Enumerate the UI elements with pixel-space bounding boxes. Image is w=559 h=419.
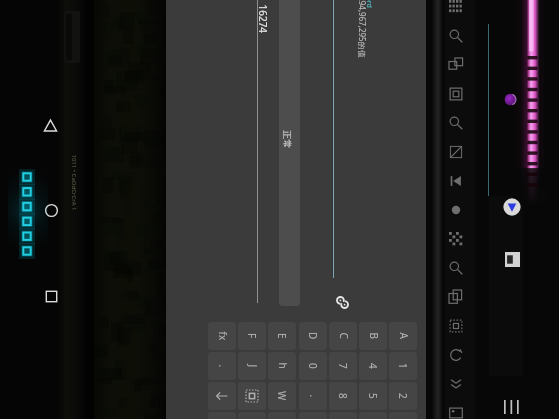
button[interactable]: Chip — [443, 226, 469, 252]
button[interactable]: . — [299, 382, 327, 410]
staticText: A — [396, 332, 410, 339]
button[interactable]: Recents — [37, 282, 65, 310]
button[interactable]: Zoom — [443, 255, 469, 281]
button[interactable]: Find person — [443, 110, 469, 136]
staticText: 7 — [336, 363, 350, 369]
button[interactable]: 8 — [329, 382, 357, 410]
staticText: C — [336, 332, 350, 339]
staticText: 1011 • CaOdCrCrA 1 — [69, 154, 77, 211]
button[interactable]: Copy — [443, 284, 469, 310]
button[interactable]: 7 — [329, 352, 357, 380]
staticText: 正常 — [281, 130, 292, 148]
button[interactable]: 2 — [389, 382, 417, 410]
button[interactable]: Frame — [443, 81, 469, 107]
staticText: E — [275, 333, 289, 339]
button[interactable]: Files — [502, 249, 522, 269]
button[interactable]: Image — [443, 400, 469, 419]
button[interactable]: Download — [443, 371, 469, 397]
button[interactable]: A — [389, 322, 417, 350]
staticText: h — [275, 362, 289, 369]
staticText: 4 — [366, 363, 380, 369]
button[interactable]: . — [208, 352, 236, 380]
staticText: 4,294,967,295的值 — [356, 0, 367, 58]
staticText: 5 — [366, 393, 380, 399]
button[interactable]: F — [238, 322, 266, 350]
button[interactable]: W — [268, 382, 296, 410]
staticText: J — [245, 364, 259, 367]
button[interactable]: Grid — [443, 0, 469, 20]
button[interactable]: 0 — [299, 352, 327, 380]
button[interactable]: Undo — [443, 342, 469, 368]
staticText: 8 — [336, 393, 350, 399]
staticText: . — [215, 364, 229, 367]
button[interactable]: J — [238, 352, 266, 380]
staticText: D — [306, 332, 320, 340]
button[interactable] — [208, 382, 236, 410]
button[interactable]: Home — [37, 196, 65, 224]
button[interactable]: D — [299, 322, 327, 350]
button[interactable]: 4 — [359, 352, 387, 380]
button[interactable]: B — [359, 322, 387, 350]
button[interactable]: Layers — [443, 52, 469, 78]
button[interactable]: Back — [36, 111, 64, 139]
button[interactable]: C — [329, 322, 357, 350]
staticText: fx — [215, 331, 229, 340]
button[interactable]: h — [268, 352, 296, 380]
button[interactable]: E — [268, 322, 296, 350]
button[interactable]: 5 — [359, 382, 387, 410]
staticText: word — [364, 0, 374, 8]
staticText: 3061 16274 — [258, 0, 270, 34]
staticText: 0 — [306, 363, 320, 369]
button[interactable] — [238, 382, 266, 410]
button[interactable]: fx — [208, 322, 236, 350]
button[interactable]: 1 — [389, 352, 417, 380]
staticText: B — [366, 332, 380, 339]
button[interactable]: Browser — [502, 197, 522, 217]
staticText: W — [275, 391, 289, 401]
button[interactable]: Cut — [443, 139, 469, 165]
button[interactable] — [279, 0, 300, 306]
button[interactable]: Search — [443, 23, 469, 49]
staticText: 1 — [396, 363, 410, 369]
button[interactable]: Select — [443, 313, 469, 339]
button[interactable]: Record — [443, 197, 469, 223]
staticText: . — [306, 394, 320, 397]
button[interactable]: App — [500, 89, 520, 109]
staticText: F — [245, 333, 259, 339]
button[interactable]: Previous — [443, 168, 469, 194]
staticText: 2 — [396, 393, 410, 399]
button[interactable]: Rotate — [331, 291, 353, 313]
